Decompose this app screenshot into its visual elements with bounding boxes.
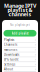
staticText: No playlists yet <box>10 23 30 27</box>
staticText: Downloads <box>4 53 19 56</box>
button[interactable]: Add playlist <box>3 30 36 37</box>
staticText: Favourites <box>4 48 17 51</box>
staticText: Settings <box>4 63 15 66</box>
button[interactable]: Settings <box>2 62 38 67</box>
staticText: › <box>35 48 36 51</box>
staticText: › <box>35 38 36 42</box>
staticText: channels <box>8 11 31 18</box>
staticText: Playlists <box>4 38 14 42</box>
staticText: Manage IPTV <box>4 2 36 9</box>
staticText: › <box>35 43 36 46</box>
staticText: › <box>35 63 36 66</box>
staticText: EPG Guide <box>4 58 19 61</box>
button[interactable]: Channels <box>2 43 38 48</box>
staticText: Add playlist <box>11 32 28 35</box>
staticText: playlist & <box>7 6 32 13</box>
button[interactable]: Favourites <box>2 48 38 52</box>
staticText: › <box>35 58 36 61</box>
button[interactable]: About <box>2 67 38 72</box>
staticText: › <box>35 67 36 71</box>
button[interactable]: Downloads <box>2 52 38 57</box>
button[interactable]: Playlists <box>2 38 38 43</box>
button[interactable]: EPG Guide <box>2 57 38 62</box>
staticText: Channels <box>4 43 17 46</box>
staticText: › <box>35 53 36 56</box>
staticText: About <box>4 67 13 71</box>
